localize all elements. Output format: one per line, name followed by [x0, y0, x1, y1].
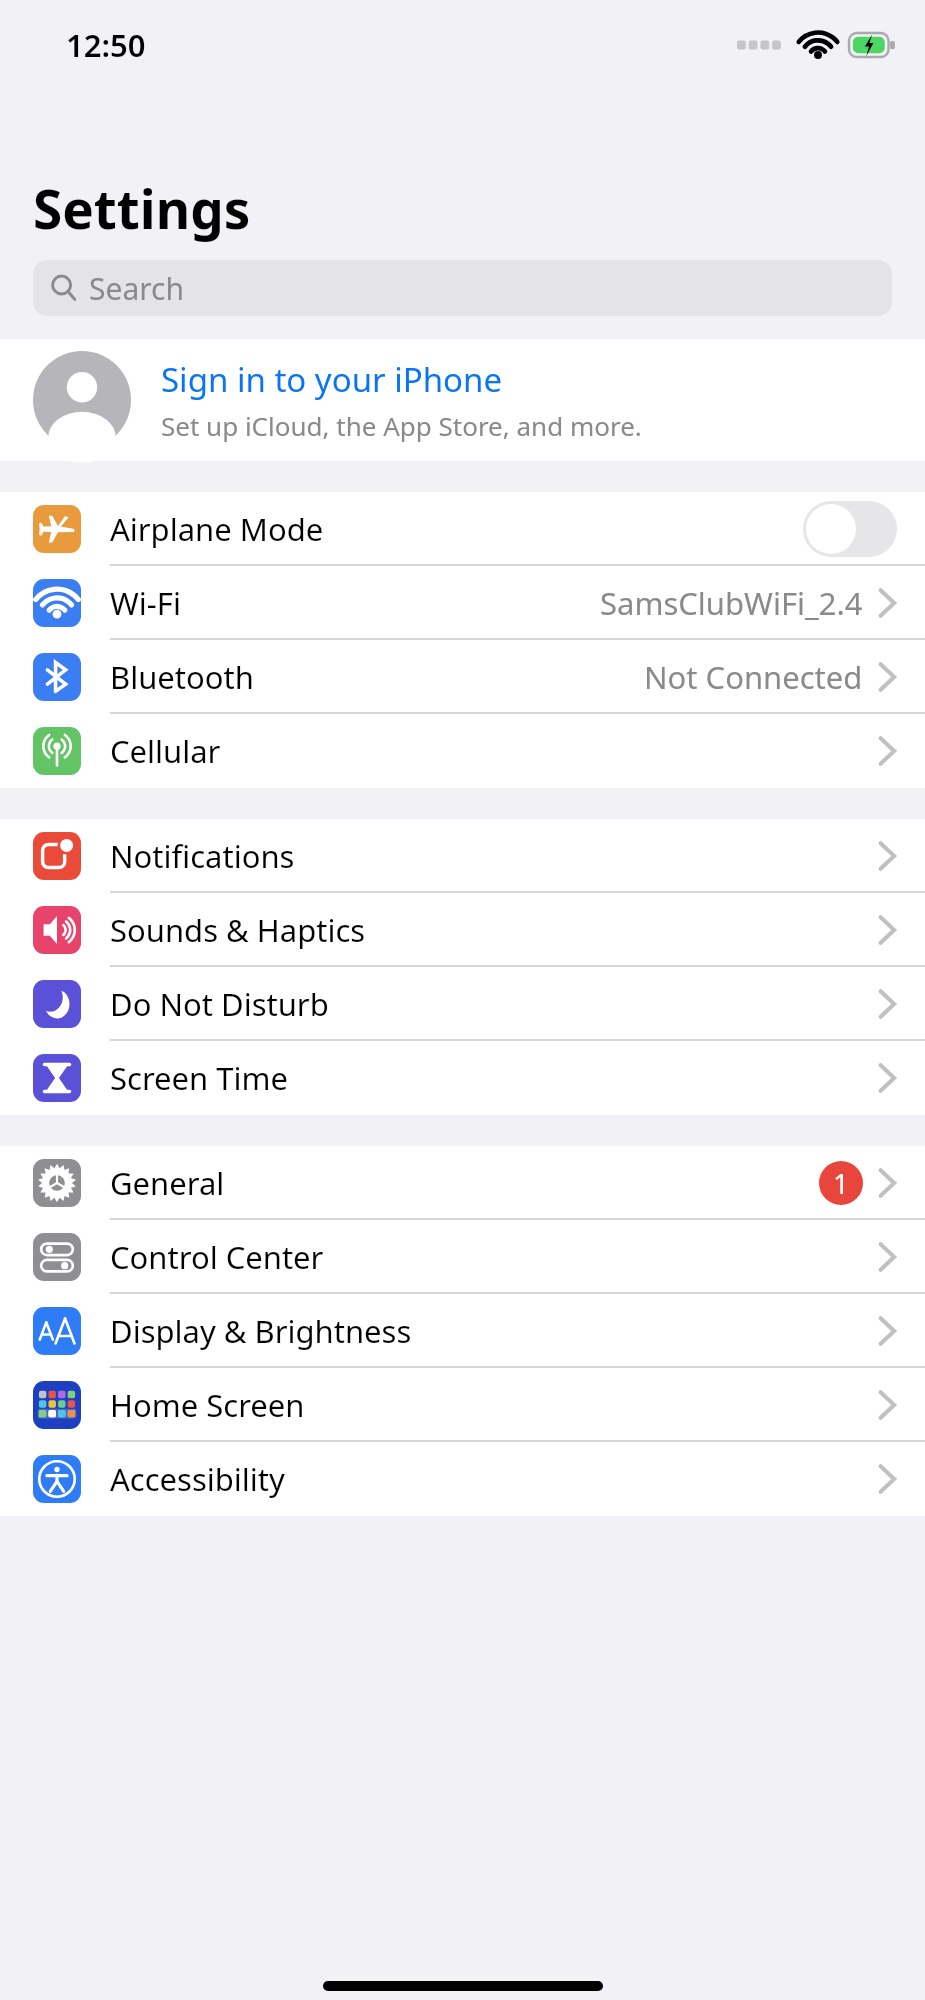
- button[interactable]: Wi-Fi: [0, 566, 925, 640]
- staticText: Search: [89, 268, 184, 309]
- button[interactable]: Cellular: [0, 714, 925, 788]
- staticText: Cellular: [110, 730, 221, 772]
- staticText: Control Center: [110, 1236, 324, 1278]
- staticText: General: [110, 1162, 225, 1204]
- button[interactable]: Sign in to your iPhone: [0, 339, 925, 461]
- staticText: 12:50: [66, 24, 146, 66]
- button[interactable]: Search: [33, 260, 892, 316]
- staticText: Bluetooth: [110, 656, 254, 698]
- staticText: Airplane Mode: [110, 508, 324, 550]
- staticText: Sign in to your iPhone: [161, 357, 503, 402]
- button[interactable]: Home Screen: [0, 1368, 925, 1442]
- staticText: Accessibility: [110, 1458, 285, 1500]
- staticText: Set up iCloud, the App Store, and more.: [161, 408, 642, 443]
- staticText: 1: [833, 1164, 850, 1202]
- button[interactable]: General: [0, 1146, 925, 1220]
- staticText: Settings: [33, 172, 251, 244]
- button[interactable]: Control Center: [0, 1220, 925, 1294]
- staticText: Not Connected: [644, 656, 863, 698]
- staticText: Display & Brightness: [110, 1310, 412, 1352]
- button[interactable]: Airplane Mode: [0, 492, 925, 566]
- button[interactable]: Bluetooth: [0, 640, 925, 714]
- button[interactable]: Sounds & Haptics: [0, 893, 925, 967]
- staticText: Sounds & Haptics: [110, 909, 366, 951]
- staticText: Do Not Disturb: [110, 983, 329, 1025]
- button[interactable]: Screen Time: [0, 1041, 925, 1115]
- staticText: Screen Time: [110, 1057, 288, 1099]
- button[interactable]: Accessibility: [0, 1442, 925, 1516]
- staticText: Notifications: [110, 835, 295, 877]
- button[interactable]: Notifications: [0, 819, 925, 893]
- button[interactable]: Display & Brightness: [0, 1294, 925, 1368]
- staticText: Wi-Fi: [110, 582, 181, 624]
- staticText: Home Screen: [110, 1384, 305, 1426]
- staticText: SamsClubWiFi_2.4: [600, 582, 863, 624]
- button[interactable]: Do Not Disturb: [0, 967, 925, 1041]
